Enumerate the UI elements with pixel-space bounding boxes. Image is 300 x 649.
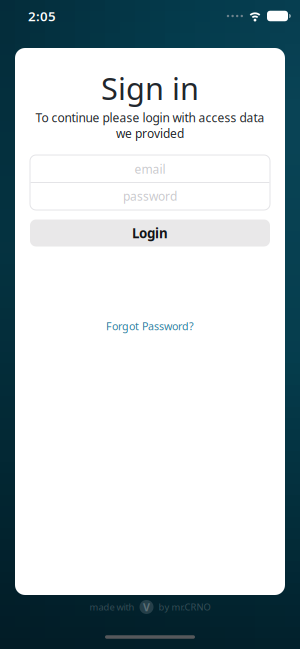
staticText: by mr.CRNO bbox=[158, 601, 210, 613]
staticText: email bbox=[134, 161, 165, 177]
staticText: To continue please login with access dat… bbox=[35, 110, 264, 125]
staticText: Sign in bbox=[101, 68, 199, 108]
staticText: password bbox=[123, 188, 177, 204]
staticText: V bbox=[143, 600, 150, 614]
staticText: Forgot Password? bbox=[106, 319, 194, 333]
staticText: made with bbox=[89, 601, 134, 613]
staticText: Login bbox=[132, 224, 168, 242]
button[interactable]: Email text field bbox=[30, 155, 270, 182]
button[interactable]: Password text field bbox=[30, 182, 270, 209]
button[interactable]: Login bbox=[30, 219, 270, 246]
staticText: we provided bbox=[116, 125, 184, 141]
staticText: 2:05 bbox=[28, 7, 56, 25]
button[interactable]: Forgot Password? bbox=[106, 319, 194, 333]
